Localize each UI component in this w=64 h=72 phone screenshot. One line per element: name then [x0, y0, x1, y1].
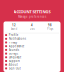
staticText: Notifications [9, 37, 26, 40]
staticText: Manage preferences [18, 15, 46, 18]
staticText: Saved [10, 27, 17, 31]
staticText: Support [9, 59, 20, 63]
button[interactable]: Notifications [3, 37, 60, 41]
staticText: Lists [29, 27, 34, 31]
staticText: Profile [9, 33, 19, 37]
button[interactable]: About [3, 63, 60, 66]
staticText: Sounds [9, 48, 19, 52]
staticText: 4 [31, 23, 33, 27]
staticText: 12 [12, 23, 16, 27]
staticText: Storage [9, 52, 19, 55]
staticText: Sign Out [9, 67, 21, 70]
button[interactable]: Sign Out [3, 66, 60, 70]
staticText: 98 [48, 23, 52, 27]
staticText: ACCOUNT SETTINGS [13, 9, 50, 14]
staticText: Language [9, 55, 22, 59]
staticText: Plays [47, 27, 53, 31]
button[interactable]: Profile [3, 33, 60, 37]
staticText: Appearance [9, 44, 25, 48]
button[interactable]: Privacy [3, 41, 60, 44]
button[interactable]: Storage [3, 52, 60, 55]
button[interactable]: Support [3, 59, 60, 63]
staticText: Privacy [9, 41, 17, 44]
staticText: About [9, 63, 18, 66]
button[interactable]: Language [3, 55, 60, 59]
button[interactable]: Appearance [3, 44, 60, 48]
button[interactable]: Sounds [3, 48, 60, 52]
